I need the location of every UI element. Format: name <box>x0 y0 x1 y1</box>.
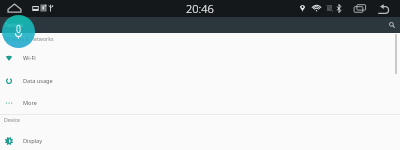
button[interactable]: Display <box>0 130 400 150</box>
staticText: Display <box>23 137 43 145</box>
staticText: More <box>23 99 37 107</box>
button[interactable]: More <box>0 92 400 113</box>
button[interactable]: Home <box>7 3 22 13</box>
button[interactable]: Wi-Fi <box>0 47 400 68</box>
staticText: Data usage <box>23 77 53 85</box>
button[interactable]: Back <box>378 4 389 14</box>
button[interactable]: Search <box>386 19 398 31</box>
staticText: 20:46 <box>186 1 214 16</box>
button[interactable]: Voice search <box>2 15 35 48</box>
staticText: Wi-Fi <box>23 54 36 62</box>
staticText: Device <box>4 116 20 123</box>
button[interactable]: Data usage <box>0 70 400 91</box>
button[interactable]: Recents <box>353 4 367 13</box>
staticText: Wireless & networks <box>4 35 54 42</box>
staticText: Settings <box>5 22 24 29</box>
